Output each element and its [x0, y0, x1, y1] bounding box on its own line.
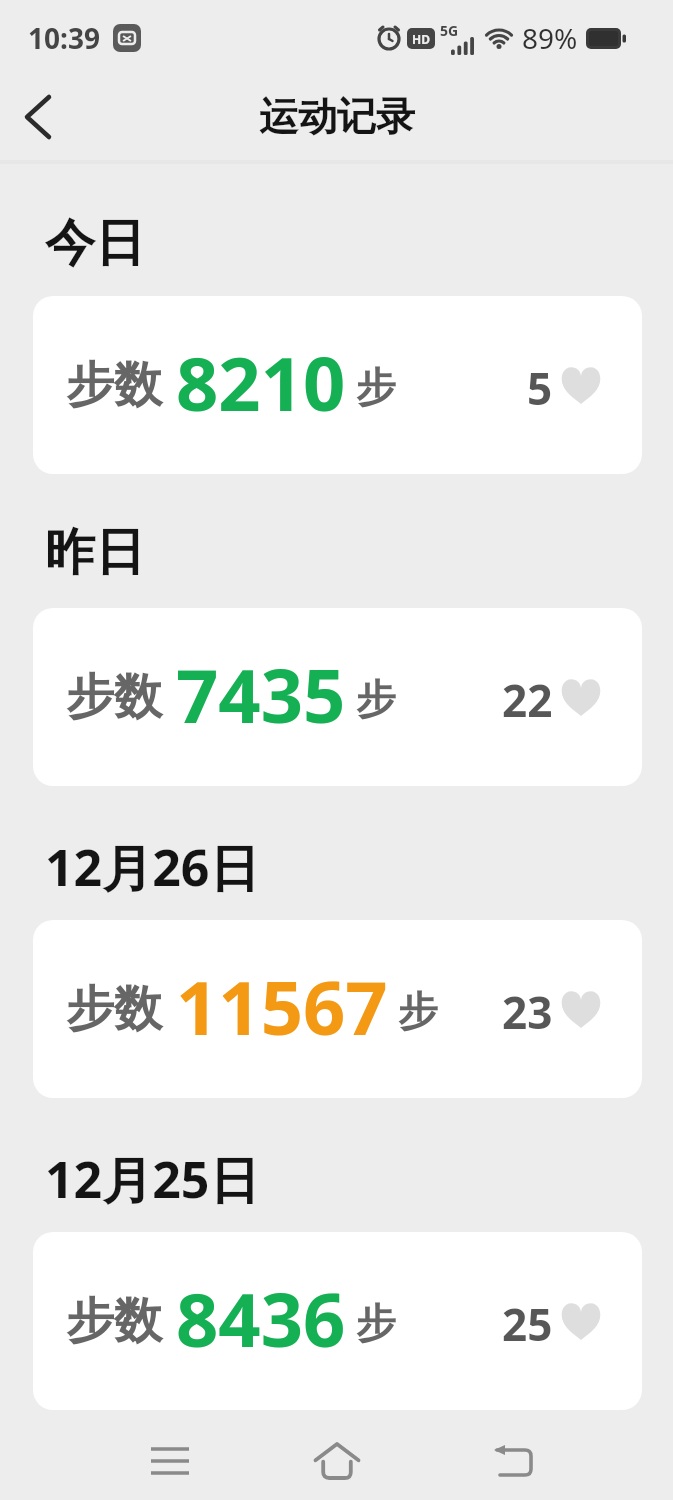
staticText: 8436	[176, 1268, 346, 1369]
staticText: 步数	[66, 355, 162, 415]
staticText: 昨日	[45, 521, 145, 584]
staticText: 运动记录	[259, 92, 415, 141]
button[interactable]: 步数	[33, 608, 642, 786]
staticText: 5	[527, 358, 553, 418]
staticText: 10:39	[28, 19, 100, 57]
staticText: 步数	[66, 1291, 162, 1351]
staticText: 89%	[522, 19, 578, 57]
staticText: 12月25日	[45, 1145, 260, 1213]
staticText: 12月26日	[45, 833, 260, 901]
button[interactable]	[140, 1431, 200, 1491]
button[interactable]	[14, 93, 62, 141]
staticText: 步	[356, 362, 396, 412]
button[interactable]: 步数	[33, 296, 642, 474]
staticText: 11567	[176, 956, 388, 1057]
staticText: 5G	[440, 21, 459, 40]
staticText: 23	[502, 982, 553, 1042]
staticText: 22	[502, 670, 553, 730]
staticText: 步数	[66, 667, 162, 727]
staticText: 步	[398, 986, 438, 1036]
button[interactable]: 步数	[33, 920, 642, 1098]
button[interactable]	[483, 1431, 543, 1491]
staticText: 步	[356, 1298, 396, 1348]
staticText: 步数	[66, 979, 162, 1039]
button[interactable]: 步数	[33, 1232, 642, 1410]
button[interactable]	[307, 1431, 367, 1491]
staticText: 25	[502, 1294, 553, 1354]
staticText: 7435	[176, 644, 346, 745]
staticText: 今日	[45, 212, 145, 275]
staticText: HD	[412, 31, 430, 47]
staticText: 步	[356, 674, 396, 724]
staticText: 8210	[176, 332, 346, 433]
